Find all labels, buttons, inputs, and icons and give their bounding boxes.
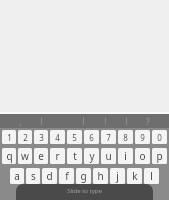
staticText: t	[73, 149, 77, 163]
staticText: w	[21, 149, 29, 163]
staticText: ,	[19, 116, 22, 127]
button[interactable]: 0	[152, 130, 167, 144]
staticText: s	[31, 169, 36, 183]
button[interactable]: Keyboard hint	[16, 184, 153, 200]
staticText: l	[150, 169, 153, 183]
staticText: y	[89, 149, 95, 163]
staticText: q	[6, 149, 13, 163]
button[interactable]: t	[67, 148, 82, 164]
staticText: 9	[140, 132, 145, 143]
button[interactable]: p	[152, 148, 167, 164]
button[interactable]: s	[26, 168, 40, 184]
staticText: 6	[89, 132, 94, 143]
staticText: 8	[123, 132, 128, 143]
button[interactable]: w	[18, 148, 32, 164]
button[interactable]: a	[10, 168, 24, 184]
staticText: 4	[55, 132, 60, 143]
staticText: a	[14, 169, 20, 183]
button[interactable]: k	[127, 168, 142, 184]
staticText: o	[139, 149, 146, 163]
staticText: v	[82, 188, 88, 199]
button[interactable]: j	[110, 168, 125, 184]
button[interactable]: g	[76, 168, 91, 184]
button[interactable]: 6	[84, 130, 99, 144]
staticText: e	[38, 149, 44, 163]
staticText: ?	[146, 116, 150, 127]
staticText: d	[46, 169, 53, 183]
staticText: 2	[23, 132, 28, 143]
button[interactable]: 9	[135, 130, 150, 144]
staticText: i	[124, 149, 127, 163]
button[interactable]: o	[135, 148, 150, 164]
staticText: k	[132, 169, 138, 183]
staticText: 7	[106, 132, 111, 143]
button[interactable]: 2	[18, 130, 32, 144]
staticText: 5	[72, 132, 77, 143]
button[interactable]: 5	[67, 130, 82, 144]
button[interactable]: !	[84, 114, 126, 128]
button[interactable]: b	[95, 188, 112, 199]
staticText: j	[116, 169, 119, 183]
button[interactable]: ?	[127, 114, 169, 128]
staticText: 1	[7, 132, 12, 143]
button[interactable]: q	[2, 148, 16, 164]
staticText: c	[63, 188, 68, 199]
button[interactable]: 8	[118, 130, 133, 144]
button[interactable]: e	[34, 148, 48, 164]
staticText: b	[100, 188, 107, 199]
staticText: Slide to type	[67, 187, 102, 195]
button[interactable]: l	[144, 168, 159, 184]
button[interactable]: 7	[101, 130, 116, 144]
button[interactable]: 1	[2, 130, 16, 144]
button[interactable]: u	[101, 148, 116, 164]
staticText: f	[65, 169, 69, 183]
button[interactable]: f	[59, 168, 74, 184]
button[interactable]: d	[42, 168, 57, 184]
staticText: r	[55, 149, 60, 163]
staticText: !	[104, 116, 107, 127]
button[interactable]: c	[57, 188, 74, 199]
button[interactable]: i	[118, 148, 133, 164]
staticText: u	[105, 149, 112, 163]
button[interactable]: v	[76, 188, 93, 199]
staticText: h	[97, 169, 104, 183]
button[interactable]: r	[50, 148, 65, 164]
button[interactable]: h	[93, 168, 108, 184]
staticText: g	[80, 169, 87, 183]
staticText: 3	[39, 132, 44, 143]
staticText: 0	[157, 132, 162, 143]
button[interactable]: 4	[50, 130, 65, 144]
button[interactable]: 3	[34, 130, 48, 144]
staticText: p	[156, 149, 163, 163]
button[interactable]: y	[84, 148, 99, 164]
